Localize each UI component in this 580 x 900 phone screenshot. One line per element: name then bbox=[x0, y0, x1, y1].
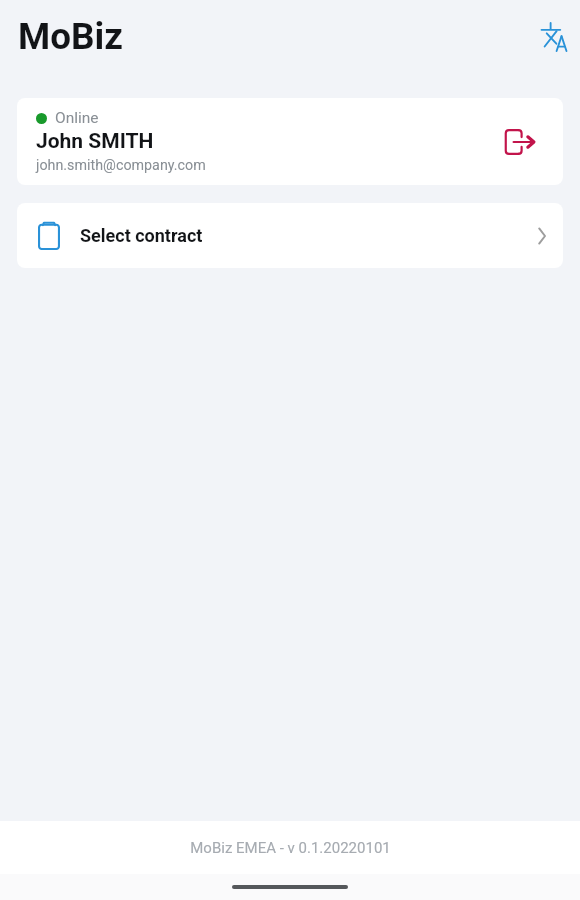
button[interactable]: Translate bbox=[532, 15, 576, 59]
staticText: MoBiz EMEA - v 0.1.20220101 bbox=[190, 839, 391, 857]
staticText: John SMITH bbox=[36, 129, 154, 154]
button[interactable]: Logout bbox=[497, 119, 543, 165]
button[interactable]: Select contract bbox=[17, 203, 563, 268]
staticText: Online bbox=[55, 109, 99, 127]
button[interactable]: Online bbox=[17, 98, 563, 185]
staticText: Select contract bbox=[80, 225, 203, 246]
staticText: john.smith@company.com bbox=[36, 157, 206, 174]
staticText: MoBiz bbox=[18, 15, 123, 58]
